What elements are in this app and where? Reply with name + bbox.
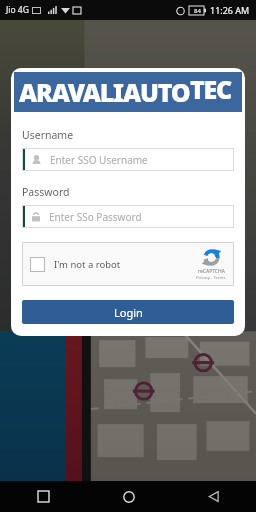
staticText: TECH	[190, 72, 237, 112]
staticText: Enter SSo Password	[49, 210, 142, 224]
button[interactable]: Recent apps	[0, 481, 86, 512]
staticText: Password	[22, 185, 70, 199]
staticText: 84	[194, 7, 201, 15]
button[interactable]: Enter SSo Password	[22, 205, 234, 228]
staticText: AUTO	[123, 75, 190, 109]
staticText: reCAPTCHA	[198, 268, 225, 275]
button[interactable]: Home	[86, 481, 171, 512]
staticText: Username	[22, 128, 74, 142]
button[interactable]: Back	[171, 481, 256, 512]
staticText: ARAVALI	[19, 75, 123, 109]
staticText: Login	[114, 305, 143, 320]
button[interactable]: I'm not a robot checkbox	[30, 257, 45, 272]
staticText: 11:26 AM	[210, 4, 250, 16]
button[interactable]: Enter SSO Username	[22, 148, 234, 171]
button[interactable]: Login	[22, 300, 234, 324]
staticText: Jio 4G	[6, 4, 29, 16]
staticText: Enter SSO Username	[50, 153, 148, 167]
staticText: Privacy - Terms	[196, 275, 226, 281]
staticText: I'm not a robot	[54, 258, 121, 271]
